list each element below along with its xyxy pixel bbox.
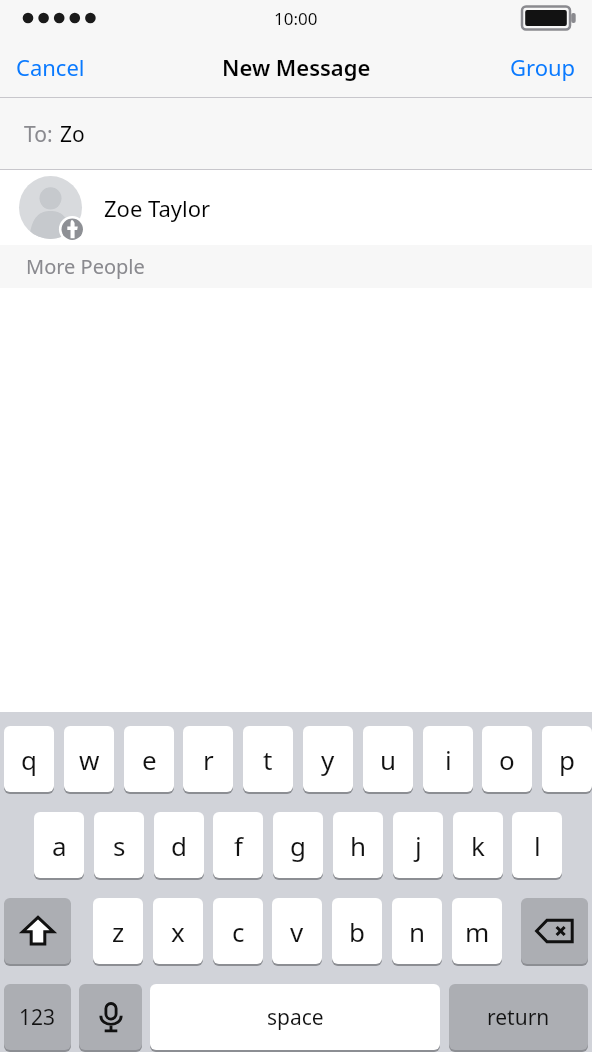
staticText: 10:00 — [274, 7, 318, 30]
staticText: Cancel — [16, 52, 85, 82]
button[interactable]: To: — [0, 98, 592, 170]
button[interactable]: j — [393, 812, 443, 878]
button[interactable]: t — [243, 726, 293, 792]
staticText: More People — [26, 253, 145, 280]
staticText: g — [290, 828, 306, 863]
staticText: n — [409, 914, 426, 949]
button[interactable]: Cancel — [0, 40, 101, 94]
staticText: y — [321, 742, 335, 777]
button[interactable]: a — [34, 812, 84, 878]
staticText: New Message — [222, 52, 371, 82]
button[interactable]: h — [333, 812, 383, 878]
staticText: u — [380, 742, 397, 777]
button[interactable]: 123 — [4, 984, 71, 1050]
button[interactable]: Group — [494, 40, 592, 94]
button[interactable]: Backspace — [521, 898, 588, 964]
staticText: p — [559, 742, 575, 777]
staticText: m — [465, 914, 490, 949]
staticText: r — [203, 742, 214, 777]
button[interactable]: k — [453, 812, 503, 878]
button[interactable]: r — [183, 726, 233, 792]
button[interactable]: w — [64, 726, 114, 792]
staticText: e — [142, 742, 157, 777]
staticText: h — [350, 828, 367, 863]
staticText: d — [171, 828, 187, 863]
button[interactable]: v — [272, 898, 322, 964]
staticText: z — [112, 914, 125, 949]
button[interactable]: l — [512, 812, 562, 878]
button[interactable]: i — [423, 726, 473, 792]
button[interactable]: e — [124, 726, 174, 792]
button[interactable]: p — [542, 726, 592, 792]
button[interactable]: c — [213, 898, 263, 964]
button[interactable]: d — [154, 812, 204, 878]
staticText: i — [445, 742, 452, 777]
button[interactable]: b — [332, 898, 382, 964]
staticText: l — [534, 828, 541, 863]
staticText: o — [499, 742, 515, 777]
staticText: c — [232, 914, 245, 949]
staticText: Zo — [60, 120, 85, 149]
staticText: x — [171, 914, 185, 949]
staticText: Zoe Taylor — [104, 193, 211, 223]
staticText: v — [290, 914, 304, 949]
button[interactable]: s — [94, 812, 144, 878]
staticText: b — [349, 914, 365, 949]
button[interactable]: q — [4, 726, 54, 792]
button[interactable]: space — [150, 984, 440, 1050]
button[interactable]: n — [392, 898, 442, 964]
button[interactable]: y — [303, 726, 353, 792]
staticText: return — [487, 1003, 550, 1032]
button[interactable]: More People — [0, 245, 592, 288]
button[interactable]: Shift — [4, 898, 71, 964]
staticText: space — [267, 1003, 324, 1032]
button[interactable]: return — [449, 984, 588, 1050]
button[interactable]: Dictate — [79, 984, 142, 1050]
staticText: f — [234, 828, 243, 863]
button[interactable]: o — [482, 726, 532, 792]
button[interactable]: g — [273, 812, 323, 878]
button[interactable]: Zoe Taylor — [0, 170, 592, 245]
button[interactable]: f — [213, 812, 263, 878]
staticText: w — [79, 742, 100, 777]
button[interactable]: z — [93, 898, 143, 964]
button[interactable]: x — [153, 898, 203, 964]
staticText: j — [415, 828, 422, 863]
staticText: 123 — [19, 1003, 56, 1032]
staticText: q — [21, 742, 37, 777]
staticText: Group — [510, 52, 576, 82]
button[interactable]: m — [452, 898, 502, 964]
staticText: a — [52, 828, 67, 863]
staticText: t — [263, 742, 273, 777]
button[interactable]: u — [363, 726, 413, 792]
staticText: s — [113, 828, 126, 863]
staticText: k — [471, 828, 485, 863]
staticText: To: — [24, 120, 53, 149]
